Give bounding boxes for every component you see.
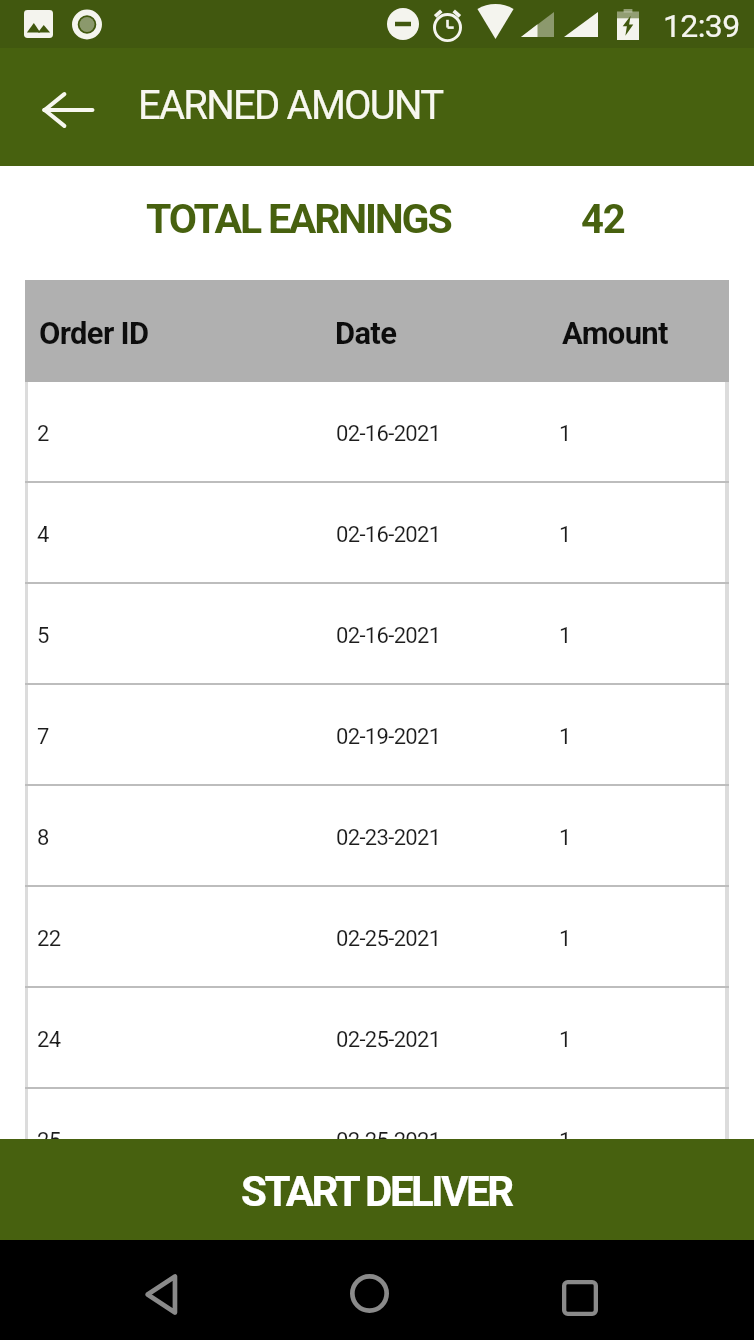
- staticText: 25: [37, 1128, 61, 1139]
- staticText: 1: [559, 724, 571, 750]
- staticText: Order ID: [39, 315, 149, 351]
- staticText: 02-25-2021: [336, 1128, 441, 1139]
- staticText: 1: [559, 522, 571, 548]
- button[interactable]: 22: [25, 887, 729, 988]
- staticText: 1: [559, 926, 571, 952]
- staticText: 02-16-2021: [336, 421, 441, 447]
- button[interactable]: 7: [25, 685, 729, 786]
- button[interactable]: Home: [337, 1261, 402, 1326]
- button[interactable]: 5: [25, 584, 729, 685]
- staticText: 02-25-2021: [336, 1027, 441, 1053]
- staticText: 1: [559, 1027, 571, 1053]
- button[interactable]: 24: [25, 988, 729, 1089]
- staticText: 42: [581, 196, 625, 243]
- staticText: 1: [559, 825, 571, 851]
- staticText: Date: [335, 315, 397, 351]
- staticText: 02-19-2021: [336, 724, 441, 750]
- staticText: 4: [37, 522, 49, 548]
- staticText: 02-23-2021: [336, 825, 441, 851]
- staticText: 02-25-2021: [336, 926, 441, 952]
- staticText: START DELIVER: [241, 1167, 512, 1216]
- button[interactable]: START DELIVER: [0, 1139, 754, 1240]
- staticText: 02-16-2021: [336, 522, 441, 548]
- button[interactable]: 4: [25, 483, 729, 584]
- staticText: TOTAL EARNINGS: [146, 195, 451, 243]
- staticText: 02-16-2021: [336, 623, 441, 649]
- staticText: 5: [37, 623, 49, 649]
- staticText: 8: [37, 825, 49, 851]
- staticText: 12:39: [663, 7, 740, 45]
- button[interactable]: Back: [129, 1262, 194, 1327]
- staticText: 1: [559, 623, 571, 649]
- button[interactable]: 8: [25, 786, 729, 887]
- button[interactable]: 25: [25, 1089, 729, 1139]
- staticText: 24: [37, 1027, 61, 1053]
- staticText: 2: [37, 421, 49, 447]
- staticText: 1: [559, 1128, 571, 1139]
- staticText: 22: [37, 926, 61, 952]
- button[interactable]: Recents: [547, 1265, 612, 1330]
- button[interactable]: 2: [25, 382, 729, 483]
- staticText: Amount: [562, 315, 668, 351]
- button[interactable]: Back: [31, 74, 103, 146]
- staticText: 1: [559, 421, 571, 447]
- staticText: 7: [37, 724, 49, 750]
- staticText: EARNED AMOUNT: [138, 82, 443, 129]
